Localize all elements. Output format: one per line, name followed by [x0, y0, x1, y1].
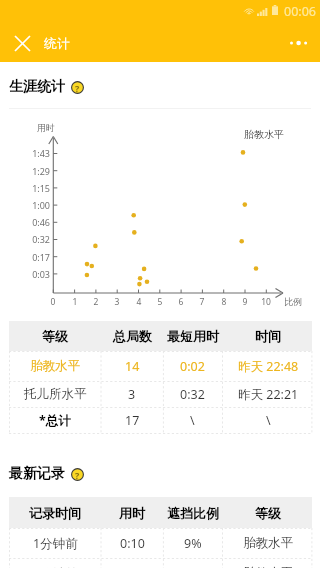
staticText: 9% — [184, 535, 202, 552]
staticText: 1分钟前 — [33, 535, 78, 552]
staticText: 14 — [125, 358, 140, 375]
staticText: 统计 — [44, 35, 70, 51]
staticText: 1 — [65, 296, 85, 308]
button[interactable]: 最新记录 — [9, 465, 84, 483]
staticText: 0:10 — [120, 535, 145, 552]
staticText: 时间 — [255, 328, 281, 344]
staticText: 昨天 22:48 — [238, 358, 299, 375]
staticText: 3 — [128, 386, 136, 403]
staticText: 8 — [214, 296, 234, 308]
staticText: 1:00 — [24, 199, 50, 211]
staticText: 0:17 — [24, 251, 50, 263]
staticText: 1:43 — [24, 147, 50, 159]
button[interactable]: 生涯统计 — [9, 78, 84, 96]
staticText: 最短用时 — [167, 328, 219, 344]
staticText: 等级 — [42, 328, 68, 344]
staticText: 遮挡比例 — [167, 505, 219, 521]
staticText: 胎教水平 — [30, 358, 80, 374]
staticText: \ — [266, 412, 271, 429]
staticText: 用时 — [119, 505, 145, 521]
staticText: 比例 — [284, 296, 302, 307]
button[interactable]: More options — [280, 21, 320, 65]
staticText: 等级 — [255, 505, 281, 521]
staticText: 3 — [107, 296, 127, 308]
staticText: 最新记录 — [9, 465, 65, 483]
staticText: ? — [75, 82, 80, 94]
staticText: 0:32 — [24, 233, 50, 245]
staticText: 17 — [125, 412, 140, 429]
staticText: 托儿所水平 — [24, 386, 87, 402]
staticText: 0:46 — [24, 216, 50, 228]
staticText: 生涯统计 — [9, 78, 65, 96]
staticText: 1:15 — [24, 182, 50, 194]
button[interactable]: Close — [0, 21, 44, 65]
staticText: 0:03 — [24, 268, 50, 280]
staticText: 0:02 — [180, 358, 205, 375]
staticText: 00:06 — [284, 3, 316, 20]
staticText: 昨天 22:21 — [238, 386, 299, 403]
staticText: 0 — [43, 296, 63, 308]
staticText: 2 — [86, 296, 106, 308]
staticText: 4 — [129, 296, 149, 308]
staticText: 用时 — [37, 122, 55, 133]
staticText: 5 — [150, 296, 170, 308]
staticText: 6 — [171, 296, 191, 308]
staticText: 2分钟前 — [33, 565, 78, 568]
staticText: 记录时间 — [29, 505, 81, 521]
staticText: 0:32 — [180, 386, 205, 403]
staticText: 9 — [235, 296, 255, 308]
staticText: 1:29 — [24, 165, 50, 177]
staticText: *总计 — [39, 412, 71, 429]
staticText: \ — [190, 412, 195, 429]
staticText: 10 — [256, 296, 276, 308]
staticText: 胎教水平 — [243, 535, 293, 551]
staticText: 总局数 — [113, 328, 152, 344]
staticText: 7 — [192, 296, 212, 308]
staticText: ? — [75, 469, 80, 481]
staticText: 胎教水平 — [244, 128, 284, 141]
staticText: 胎教水平 — [243, 565, 293, 568]
